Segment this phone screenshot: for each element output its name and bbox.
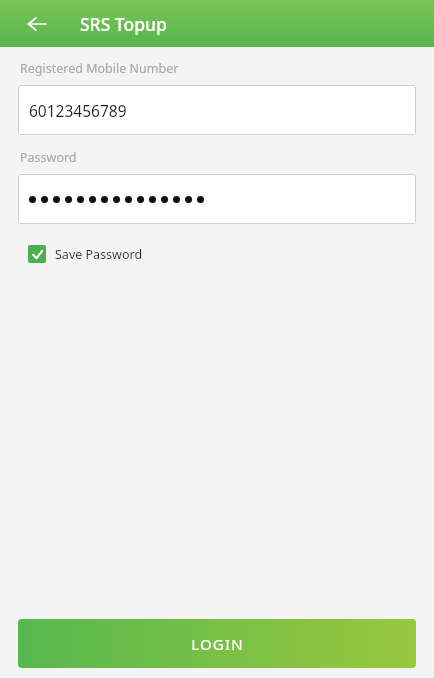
button[interactable]: Save Password	[22, 241, 149, 267]
staticText: LOGIN	[191, 634, 244, 654]
staticText: SRS Topup	[80, 12, 167, 36]
button[interactable]	[18, 174, 416, 224]
staticText: Password	[20, 149, 77, 166]
staticText: Registered Mobile Number	[20, 60, 179, 77]
button[interactable]: Back	[20, 7, 54, 41]
button[interactable]: 60123456789	[18, 85, 416, 135]
staticText: Save Password	[55, 246, 143, 263]
button[interactable]: LOGIN	[18, 619, 416, 668]
staticText: 60123456789	[29, 100, 127, 121]
